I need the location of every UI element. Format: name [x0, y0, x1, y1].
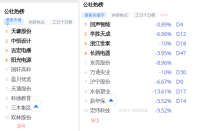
- staticText: 搜索关键字: [5, 17, 21, 27]
- staticText: 9: [5, 105, 7, 110]
- button[interactable]: Back to top: [30, 100, 42, 112]
- button[interactable]: 工日十日榜: [133, 12, 158, 18]
- staticText: 吉宏电播: [11, 47, 31, 54]
- button[interactable]: 2: [0, 36, 78, 46]
- staticText: -13.61%: [152, 88, 171, 95]
- button[interactable]: 8: [80, 87, 204, 96]
- staticText: 9/3: [91, 117, 99, 124]
- button[interactable]: 10: [80, 106, 204, 115]
- staticText: -9.52%: [155, 107, 171, 114]
- staticText: 2: [84, 31, 86, 37]
- staticText: -5.52%: [155, 97, 171, 104]
- staticText: 中午: [160, 13, 168, 18]
- staticText: 2: [5, 38, 7, 43]
- staticText: 6: [5, 76, 7, 82]
- staticText: 工日十日榜: [135, 13, 155, 18]
- staticText: 3: [84, 41, 86, 46]
- staticText: 新华保险: [90, 98, 110, 104]
- staticText: D9: [176, 78, 183, 85]
- staticText: -6.67%: [155, 78, 171, 85]
- staticText: -0.89%: [155, 21, 171, 28]
- staticText: 阳光电源: [11, 57, 31, 63]
- staticText: 5: [5, 67, 7, 72]
- button[interactable]: 搜索关键字: [3, 19, 24, 25]
- staticText: 4: [84, 50, 86, 56]
- staticText: 搜索关键字: [84, 13, 104, 18]
- button[interactable]: 内容热点: [26, 19, 47, 25]
- button[interactable]: Back to top: [105, 94, 117, 106]
- staticText: 国轩高科: [11, 66, 31, 73]
- staticText: 双林股份: [11, 114, 31, 121]
- staticText: 东莞股份: [90, 59, 110, 66]
- staticText: 10: [4, 115, 8, 120]
- staticText: 6: [84, 70, 86, 75]
- button[interactable]: 9: [80, 96, 204, 106]
- staticText: 科德教育: [11, 95, 31, 102]
- staticText: 沪宁股份: [90, 78, 110, 85]
- button[interactable]: 3: [80, 39, 204, 48]
- staticText: 长西电器: [90, 50, 110, 56]
- button[interactable]: 内容热点: [109, 12, 130, 18]
- button[interactable]: 9: [0, 103, 78, 113]
- staticText: 8: [84, 89, 86, 94]
- staticText: 8: [5, 96, 7, 101]
- staticText: 浙江世泰: [90, 40, 110, 47]
- staticText: -3.95%: [155, 50, 171, 57]
- staticText: -10%: [159, 40, 171, 47]
- staticText: D12: [176, 30, 186, 37]
- staticText: 7: [84, 79, 86, 84]
- staticText: 5: [84, 60, 86, 65]
- staticText: 10: [83, 108, 87, 113]
- staticText: 内容热点: [112, 13, 128, 18]
- button[interactable]: 8: [0, 93, 78, 103]
- button[interactable]: 5: [0, 65, 78, 74]
- staticText: 天壕股份: [11, 28, 31, 35]
- staticText: 1: [84, 22, 86, 27]
- staticText: 3: [5, 48, 7, 53]
- staticText: 回声智能: [90, 21, 110, 28]
- staticText: 中恒设计: [11, 38, 31, 44]
- staticText: D47: [176, 50, 186, 57]
- staticText: -10%: [159, 69, 171, 76]
- button[interactable]: 工日十日榜: [50, 19, 75, 25]
- staticText: 7: [5, 86, 7, 91]
- staticText: 工日十日榜: [52, 20, 72, 24]
- staticText: -8.96%: [155, 59, 171, 66]
- button[interactable]: 1: [80, 20, 204, 29]
- staticText: 3/4: [17, 122, 25, 129]
- staticText: 公社热榜: [4, 8, 24, 15]
- staticText: 4: [5, 57, 7, 63]
- button[interactable]: 5: [80, 58, 204, 67]
- button[interactable]: 6: [80, 67, 204, 77]
- staticText: 学胜天成: [90, 31, 110, 37]
- staticText: 三木集团: [11, 104, 31, 111]
- staticText: D14: [176, 97, 186, 104]
- staticText: D17: [176, 88, 186, 95]
- staticText: D30: [176, 69, 186, 76]
- button[interactable]: 1: [0, 27, 78, 36]
- staticText: -6.96%: [155, 30, 171, 37]
- staticText: 科创大 创新研发: [119, 108, 148, 113]
- staticText: 永创塑业: [90, 88, 110, 95]
- button[interactable]: 7: [80, 77, 204, 87]
- button[interactable]: 2: [80, 29, 204, 39]
- button[interactable]: 7: [0, 84, 78, 93]
- staticText: 9: [84, 98, 86, 104]
- staticText: 天通股份: [11, 85, 31, 92]
- staticText: 万通实业: [90, 69, 110, 76]
- staticText: 内容热点: [29, 20, 45, 24]
- staticText: D4: [176, 21, 183, 28]
- button[interactable]: 6: [0, 74, 78, 84]
- staticText: D18: [176, 40, 186, 47]
- button[interactable]: 4: [80, 48, 204, 58]
- button[interactable]: 4: [0, 55, 78, 65]
- staticText: 1: [5, 29, 7, 34]
- button[interactable]: 3: [0, 46, 78, 55]
- staticText: 宏纬科技: [90, 107, 110, 114]
- button[interactable]: 搜索关键字: [82, 12, 107, 18]
- staticText: 公社热榜: [83, 1, 103, 8]
- staticText: 盈川优选: [11, 76, 31, 82]
- button[interactable]: 10: [0, 113, 78, 122]
